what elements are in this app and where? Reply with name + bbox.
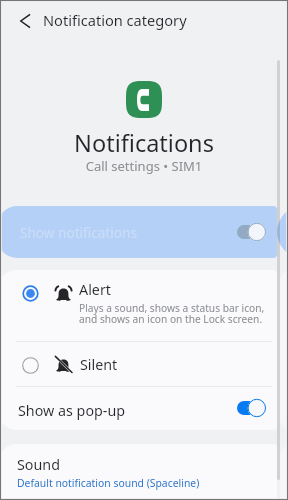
staticText: Default notification sound (Spaceline) xyxy=(17,476,200,490)
button[interactable] xyxy=(0,206,277,258)
button[interactable] xyxy=(0,386,277,430)
button[interactable] xyxy=(0,444,277,500)
staticText: Show notifications xyxy=(20,223,137,242)
staticText: Sound xyxy=(17,455,60,474)
staticText: Silent xyxy=(80,355,118,374)
staticText: Show as pop-up xyxy=(18,401,126,420)
staticText: Call settings • SIM1 xyxy=(0,157,288,175)
staticText: Alert xyxy=(79,280,111,299)
button[interactable]: Back xyxy=(7,6,43,36)
staticText: Plays a sound, shows a status bar icon, … xyxy=(79,301,269,326)
staticText: Notification category xyxy=(43,10,187,30)
button[interactable] xyxy=(0,270,277,341)
button[interactable] xyxy=(0,341,277,386)
staticText: Notifications xyxy=(0,127,288,159)
